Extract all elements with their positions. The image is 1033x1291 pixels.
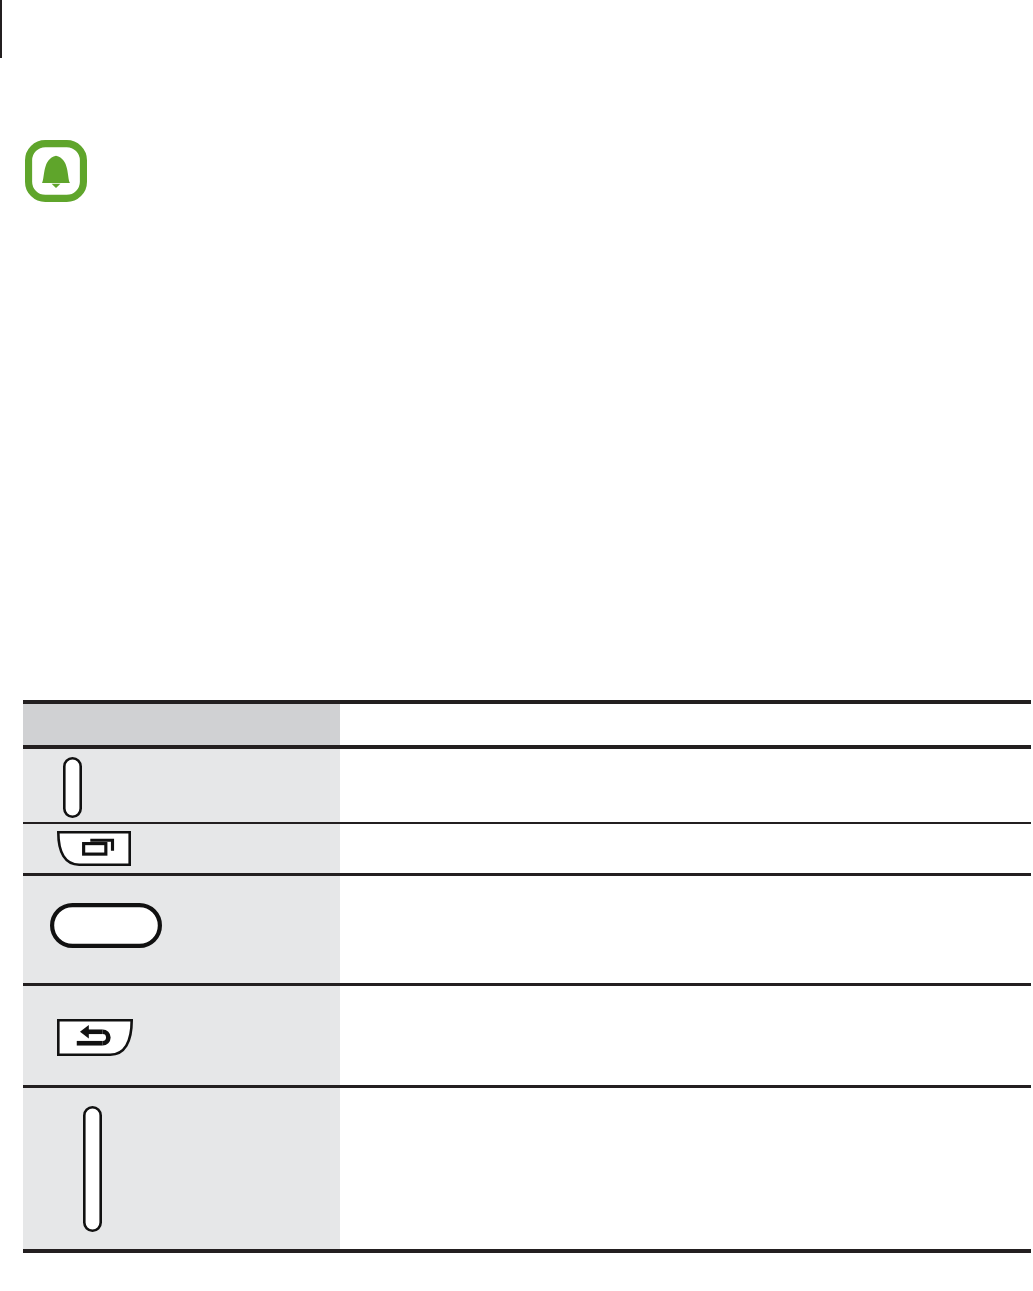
button[interactable]: Power key	[63, 757, 82, 818]
button[interactable]: Recents key	[57, 831, 131, 866]
button[interactable]: Back key	[57, 1019, 133, 1056]
button[interactable]: Home key	[50, 903, 162, 948]
button[interactable]: Volume key	[83, 1106, 102, 1232]
